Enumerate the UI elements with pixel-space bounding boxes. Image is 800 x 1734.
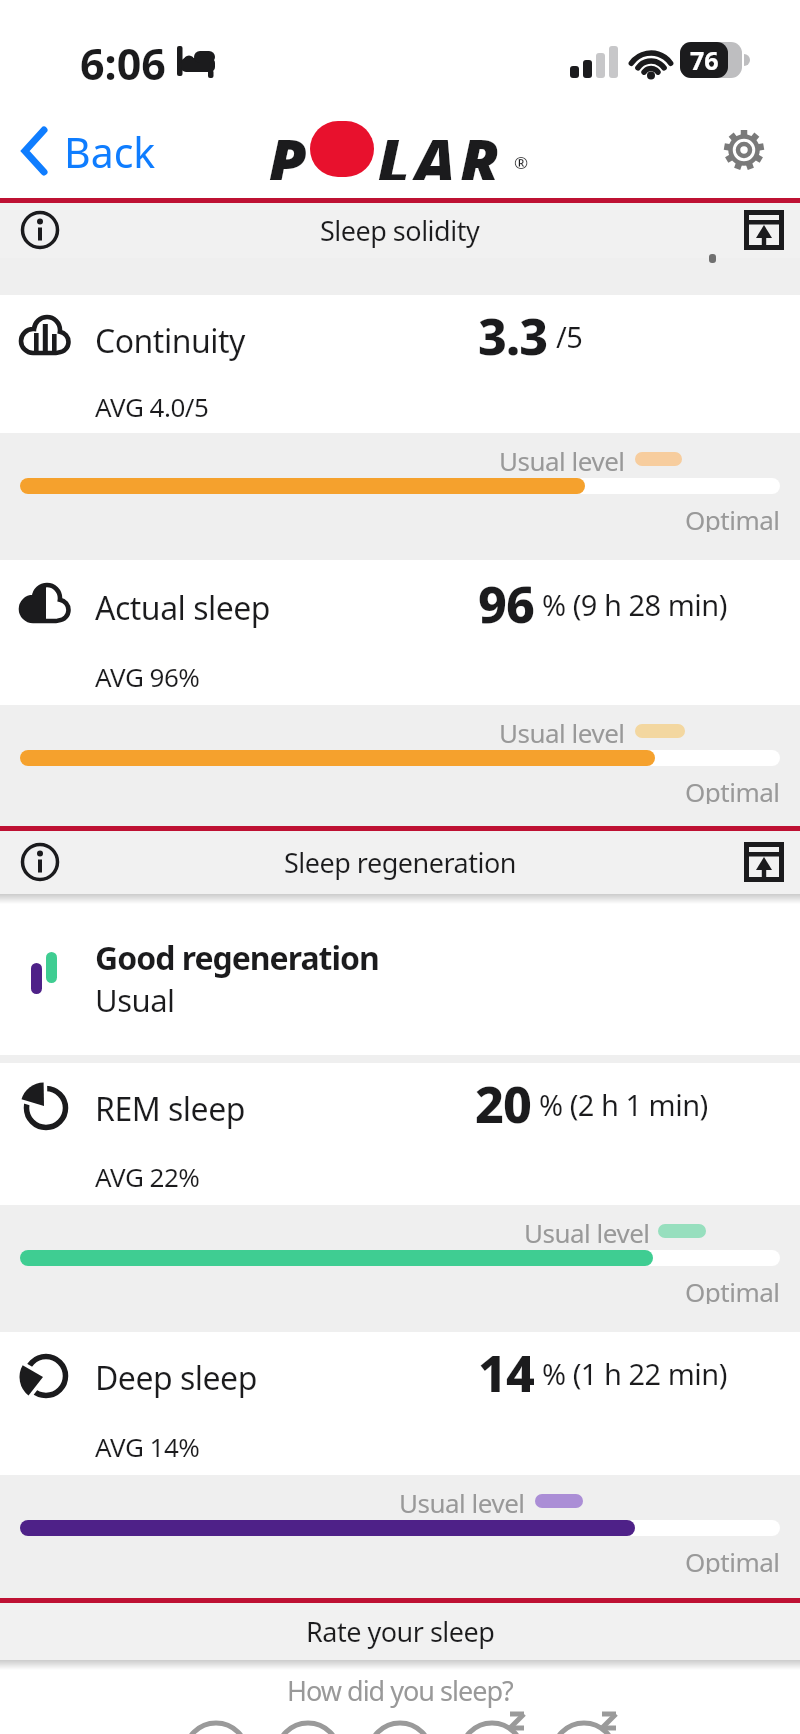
staticText: 3.3 [478,302,548,364]
staticText: 96 [478,570,534,632]
staticText: Sleep regeneration [284,844,516,881]
staticText: Optimal [685,774,780,804]
staticText: Optimal [685,1544,780,1574]
staticText: Deep sleep [95,1356,257,1400]
staticText: 6:06 [80,34,166,82]
staticText: /5 [556,317,583,356]
staticText: % (9 h 28 min) [542,585,727,624]
staticText: Sleep solidity [320,212,480,249]
staticText: AVG 96% [95,659,200,691]
staticText: Usual [95,979,175,1019]
staticText: Usual level [499,443,625,473]
staticText: P [268,118,307,180]
staticText: Usual level [499,715,625,745]
staticText: How did you sleep? [287,1672,513,1708]
staticText: 20 [475,1070,531,1132]
staticText: LAR [377,118,504,180]
staticText: Usual level [399,1485,525,1515]
staticText: AVG 4.0/5 [95,389,209,421]
staticText: Optimal [685,1274,780,1304]
staticText: Good regeneration [95,936,379,978]
staticText: ® [514,151,529,174]
staticText: Optimal [685,502,780,532]
staticText: Back [64,124,156,176]
staticText: AVG 22% [95,1159,200,1191]
staticText: 76 [690,43,719,77]
staticText: Rate your sleep [306,1613,495,1650]
staticText: % (1 h 22 min) [542,1354,727,1393]
staticText: Actual sleep [95,586,271,630]
staticText: Usual level [524,1215,650,1245]
staticText: REM sleep [95,1087,245,1131]
staticText: 14 [478,1339,534,1401]
staticText: % (2 h 1 min) [539,1085,708,1124]
staticText: AVG 14% [95,1429,200,1461]
staticText: Continuity [95,319,245,363]
